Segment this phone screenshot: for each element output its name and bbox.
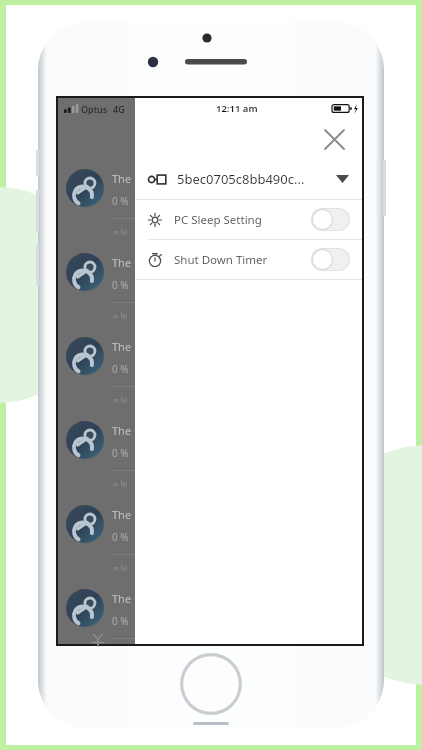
button[interactable]: Shut Down Timer (135, 240, 362, 279)
staticText: 0 % (112, 194, 129, 208)
staticText: The (112, 339, 132, 354)
staticText: 0 % (112, 446, 129, 460)
staticText: Shut Down Timer (174, 252, 268, 268)
button[interactable]: Toggle (311, 208, 350, 231)
staticText: ∞ le (112, 562, 128, 573)
staticText: 0 % (112, 614, 129, 628)
button[interactable]: Toggle (311, 248, 350, 271)
staticText: The (112, 507, 132, 522)
staticText: ∞ le (112, 394, 128, 405)
button[interactable]: 5bec0705c8bb490c... (135, 159, 362, 199)
staticText: 12:11 am (216, 102, 258, 115)
staticText: The (112, 591, 132, 606)
staticText: ∞ le (112, 478, 128, 489)
button[interactable]: Close (320, 125, 348, 153)
button[interactable]: PC Sleep Setting (135, 200, 362, 239)
staticText: 0 % (112, 278, 129, 292)
staticText: The (112, 423, 132, 438)
staticText: PC Sleep Setting (174, 212, 262, 228)
staticText: 0 % (112, 362, 129, 376)
staticText: 4G (113, 103, 125, 115)
staticText: 5bec0705c8bb490c... (177, 170, 305, 188)
staticText: ∞ le (112, 310, 128, 321)
staticText: 0 % (112, 530, 129, 544)
staticText: Optus (81, 103, 108, 115)
staticText: The (112, 255, 132, 270)
staticText: The (112, 171, 132, 186)
staticText: ∞ le (112, 226, 128, 237)
